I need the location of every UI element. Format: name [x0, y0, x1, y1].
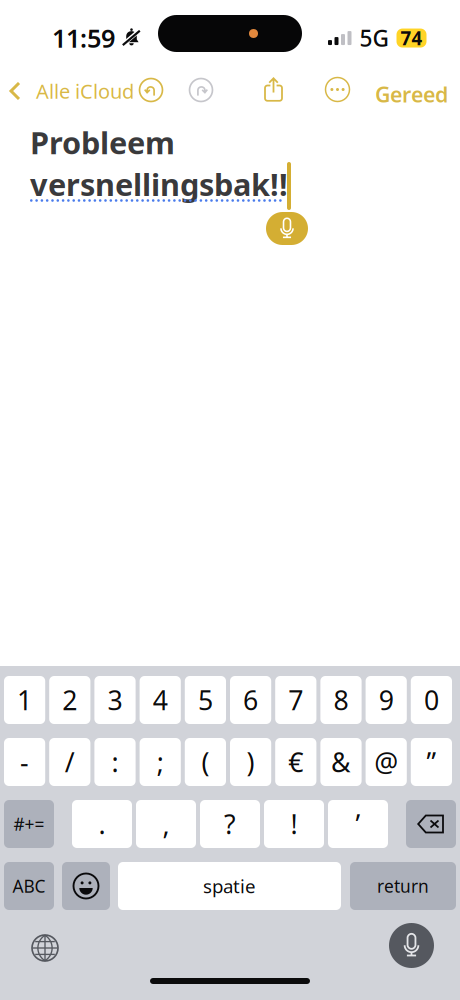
staticText: 0: [424, 682, 439, 718]
staticText: -: [20, 744, 29, 780]
button[interactable]: 8: [320, 676, 362, 724]
staticText: &: [331, 744, 351, 780]
button[interactable]: Next keyboard: [31, 934, 59, 962]
staticText: ABC: [12, 874, 45, 897]
button[interactable]: ;: [140, 738, 181, 786]
staticText: Probleem: [30, 122, 175, 163]
staticText: 1: [17, 682, 32, 718]
staticText: ’: [355, 806, 360, 842]
button[interactable]: 0: [411, 676, 452, 724]
button[interactable]: :: [94, 738, 136, 786]
button[interactable]: Share: [262, 75, 285, 103]
button[interactable]: ABC: [4, 862, 54, 910]
button[interactable]: (: [185, 738, 226, 786]
staticText: ): [247, 744, 255, 780]
button[interactable]: 4: [140, 676, 181, 724]
staticText: /: [65, 744, 75, 780]
button[interactable]: 2: [49, 676, 90, 724]
button[interactable]: #+=: [4, 800, 54, 848]
button[interactable]: &: [320, 738, 362, 786]
staticText: .: [98, 806, 105, 842]
button[interactable]: Redo: [189, 78, 213, 102]
staticText: (: [201, 744, 209, 780]
staticText: versnellingsbak!!: [30, 164, 288, 204]
button[interactable]: 6: [230, 676, 271, 724]
button[interactable]: return: [350, 862, 456, 910]
button[interactable]: !: [264, 800, 324, 848]
button[interactable]: .: [72, 800, 132, 848]
staticText: 2: [62, 682, 77, 718]
staticText: 3: [107, 682, 122, 718]
button[interactable]: Delete: [406, 800, 456, 848]
button[interactable]: ): [230, 738, 271, 786]
staticText: 9: [379, 682, 394, 718]
staticText: return: [377, 874, 429, 897]
staticText: €: [288, 744, 303, 780]
staticText: 7: [288, 682, 303, 718]
button[interactable]: 7: [275, 676, 316, 724]
button[interactable]: €: [275, 738, 316, 786]
staticText: 5: [198, 682, 213, 718]
staticText: 6: [243, 682, 258, 718]
button[interactable]: 9: [366, 676, 407, 724]
staticText: ,: [162, 806, 169, 842]
staticText: @: [374, 744, 398, 780]
button[interactable]: spatie: [118, 862, 341, 910]
button[interactable]: ”: [411, 738, 452, 786]
staticText: 8: [333, 682, 348, 718]
button[interactable]: ,: [136, 800, 196, 848]
staticText: 74: [400, 26, 422, 50]
button[interactable]: 1: [4, 676, 45, 724]
button[interactable]: /: [49, 738, 90, 786]
button[interactable]: ’: [328, 800, 388, 848]
button[interactable]: ?: [200, 800, 260, 848]
button[interactable]: Dictation: [389, 923, 434, 968]
staticText: ”: [426, 744, 436, 780]
button[interactable]: Alle iCloud: [8, 76, 134, 106]
button[interactable]: Emoji: [62, 862, 110, 910]
staticText: !: [290, 806, 297, 842]
staticText: :: [111, 744, 118, 780]
staticText: Gereed: [375, 80, 448, 108]
button[interactable]: @: [366, 738, 407, 786]
staticText: 5G: [359, 23, 388, 53]
button[interactable]: -: [4, 738, 45, 786]
staticText: 4: [153, 682, 168, 718]
staticText: Alle iCloud: [36, 78, 134, 104]
button[interactable]: Undo: [139, 78, 163, 102]
staticText: ?: [224, 806, 236, 842]
staticText: spatie: [203, 874, 256, 898]
button[interactable]: 5: [185, 676, 226, 724]
button[interactable]: Gereed: [375, 80, 448, 108]
button[interactable]: 3: [94, 676, 136, 724]
button[interactable]: More: [325, 77, 350, 102]
staticText: ;: [157, 744, 164, 780]
staticText: 11:59: [52, 21, 115, 55]
button[interactable]: Stop dictation: [266, 212, 308, 245]
staticText: #+=: [13, 812, 44, 835]
